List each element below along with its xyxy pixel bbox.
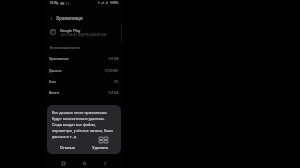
staticText: 0 Б: [114, 80, 119, 84]
staticText: 164 МБ: [108, 91, 119, 95]
button[interactable]: Назад: [47, 14, 55, 22]
staticText: Кэш: [49, 80, 56, 84]
button[interactable]: Последние приложения: [59, 159, 67, 167]
staticText: Использовано места: [50, 46, 80, 50]
staticText: Приложение: [49, 57, 69, 61]
staticText: Отмена: [60, 145, 75, 150]
button[interactable]: Главный экран: [80, 159, 88, 167]
button[interactable]: Удалить: [88, 141, 113, 154]
staticText: Все данные этого приложения будут оконча…: [52, 110, 113, 139]
button[interactable]: Данные: [44, 65, 123, 76]
staticText: Всего: [49, 91, 59, 95]
staticText: 29,00 МБ: [105, 69, 119, 73]
button[interactable]: Кэш: [44, 76, 123, 87]
staticText: 78%: [113, 1, 119, 4]
staticText: 10:05: [50, 1, 58, 4]
button[interactable]: Назад: [101, 159, 109, 167]
button[interactable]: Приложение: [44, 53, 123, 64]
staticText: Данные: [49, 69, 62, 73]
staticText: 43.3.28-41 [0] [PR] 644641430: [61, 33, 107, 37]
staticText: Удалить: [92, 145, 109, 150]
staticText: 135 МБ: [108, 57, 119, 61]
button[interactable]: Всего: [44, 87, 123, 98]
staticText: Хранилище: [56, 15, 83, 21]
staticText: Google Play: [60, 28, 81, 32]
button[interactable]: Отмена: [47, 141, 88, 154]
